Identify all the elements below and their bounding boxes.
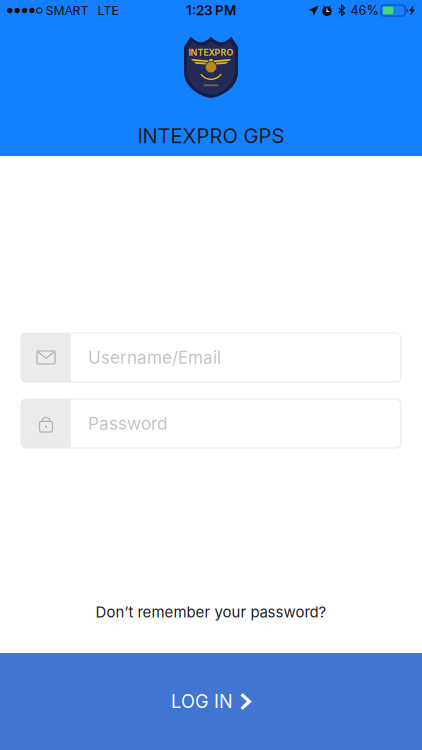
button[interactable]: LOG IN (0, 653, 422, 750)
staticText: LTE (97, 3, 118, 18)
button[interactable]: Username/Email (21, 333, 401, 382)
staticText: SMART (45, 3, 88, 18)
staticText: INTEXPRO GPS (137, 124, 284, 148)
button[interactable]: Don’t remember your password? (21, 594, 401, 630)
staticText: Password (88, 413, 168, 434)
staticText: INTEXPRO (188, 47, 233, 58)
staticText: 46% (350, 3, 378, 18)
button[interactable]: Password (21, 399, 401, 448)
staticText: 1:23 PM (186, 2, 236, 18)
staticText: LOG IN (171, 690, 233, 712)
staticText: Don’t remember your password? (95, 603, 326, 621)
staticText: Username/Email (88, 347, 221, 368)
